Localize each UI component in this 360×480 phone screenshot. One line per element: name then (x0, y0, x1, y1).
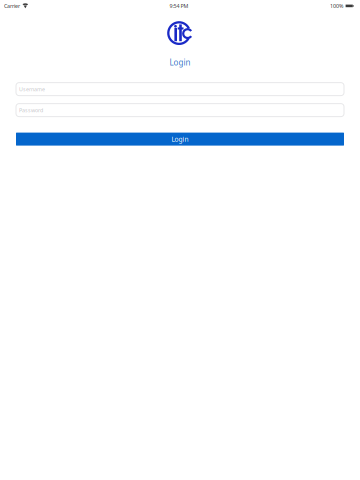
staticText: 100% (330, 2, 343, 10)
staticText: Username (19, 86, 45, 93)
staticText: Carrier (4, 2, 20, 10)
button[interactable]: Login (16, 133, 344, 146)
staticText: Login (171, 135, 188, 144)
staticText: 9:54 PM (170, 2, 189, 10)
staticText: Login (169, 57, 190, 68)
staticText: Password (19, 107, 43, 114)
